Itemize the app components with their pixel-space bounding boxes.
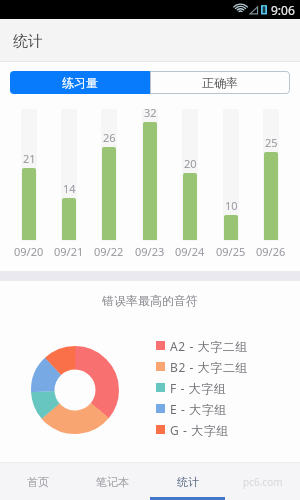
staticText: 统计 [13,32,43,51]
button[interactable]: pc6.com [225,463,300,500]
staticText: 09/26 [256,244,286,256]
staticText: 10 [225,198,238,212]
staticText: 09/22 [94,244,124,256]
staticText: B2 - 大字二组 [170,359,249,375]
button[interactable]: 首页 [0,463,75,500]
button[interactable]: 练习量 [10,71,150,94]
staticText: A2 - 大字二组 [170,338,249,354]
button[interactable]: 统计 [150,463,225,500]
staticText: 09/21 [54,244,84,256]
staticText: 笔记本 [96,475,129,489]
staticText: 练习量 [62,75,98,90]
button[interactable]: 正确率 [150,71,290,94]
staticText: 09/23 [135,244,165,256]
staticText: 14 [63,181,76,195]
staticText: 9:06 [271,2,295,18]
staticText: 09/24 [175,244,205,256]
staticText: 25 [265,135,278,149]
button[interactable]: 笔记本 [75,463,150,500]
staticText: G - 大字组 [170,422,230,438]
staticText: 09/25 [216,244,246,256]
staticText: 26 [103,130,116,144]
staticText: E - 大字组 [170,401,227,417]
staticText: 21 [23,151,36,165]
staticText: 错误率最高的音符 [0,293,300,308]
staticText: pc6.com [243,475,283,489]
staticText: F - 大字组 [170,380,227,396]
staticText: 20 [184,156,197,170]
staticText: 32 [144,105,157,119]
staticText: 09/20 [14,244,44,256]
staticText: 首页 [27,475,49,489]
staticText: 统计 [177,475,199,489]
staticText: 正确率 [202,75,238,90]
